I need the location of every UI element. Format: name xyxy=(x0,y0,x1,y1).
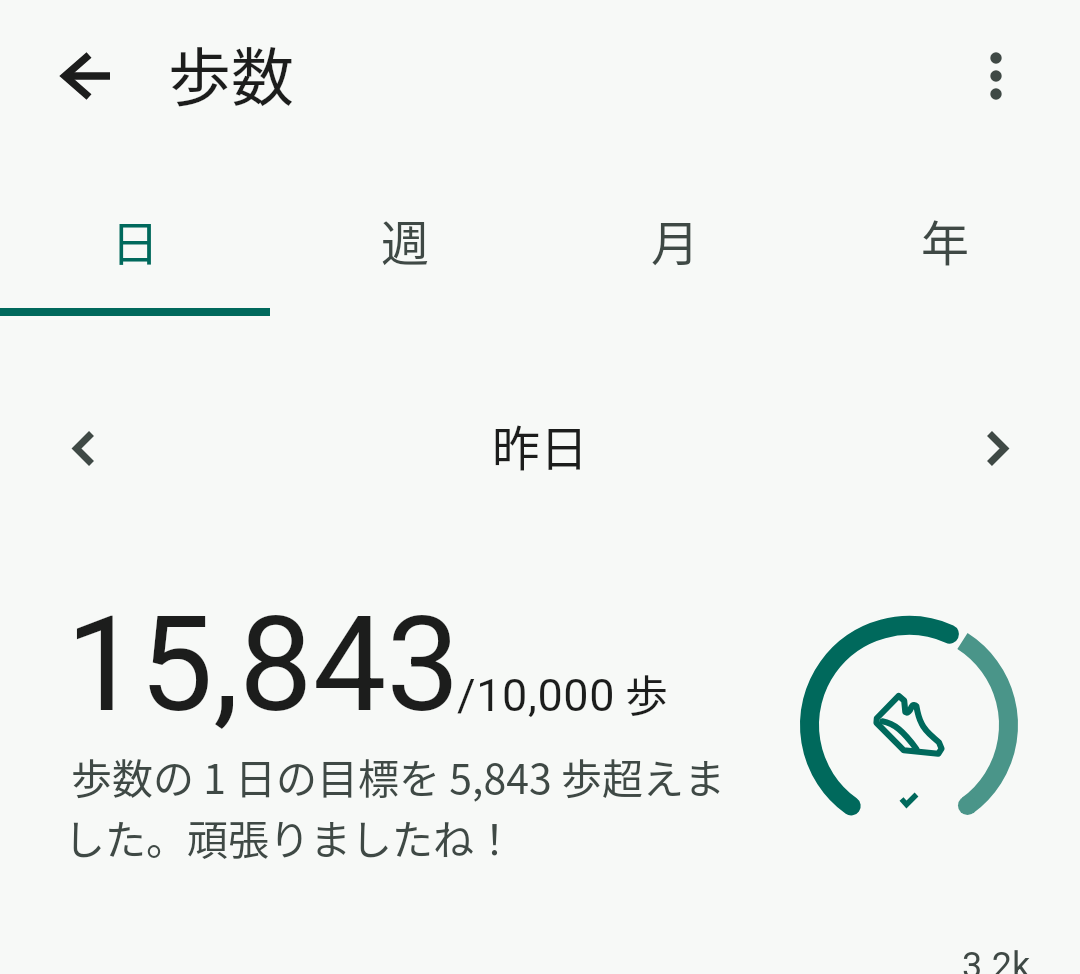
button[interactable]: Next day xyxy=(949,400,1045,496)
staticText: /10,000 xyxy=(457,669,616,722)
staticText: 昨日 xyxy=(0,410,1080,480)
button[interactable]: 日 xyxy=(0,170,270,316)
staticText: 日 xyxy=(111,205,160,275)
button[interactable]: Previous day xyxy=(36,400,132,496)
staticText: 月 xyxy=(651,205,700,275)
staticText: 年 xyxy=(921,205,970,275)
button[interactable]: More options xyxy=(948,28,1044,124)
button[interactable]: 月 xyxy=(540,170,810,316)
staticText: 歩数 xyxy=(168,27,294,118)
button[interactable]: Back xyxy=(38,28,134,124)
button[interactable]: 年 xyxy=(810,170,1080,316)
staticText: 歩数の 1 日の目標を 5,843 歩超えま xyxy=(71,746,811,805)
staticText: した。頑張りましたね！ xyxy=(64,807,804,866)
staticText: 3.2k xyxy=(962,945,1031,974)
staticText: 週 xyxy=(381,205,430,275)
staticText: 歩 xyxy=(625,662,668,724)
staticText: 15,843 xyxy=(66,588,460,742)
button[interactable]: 週 xyxy=(270,170,540,316)
